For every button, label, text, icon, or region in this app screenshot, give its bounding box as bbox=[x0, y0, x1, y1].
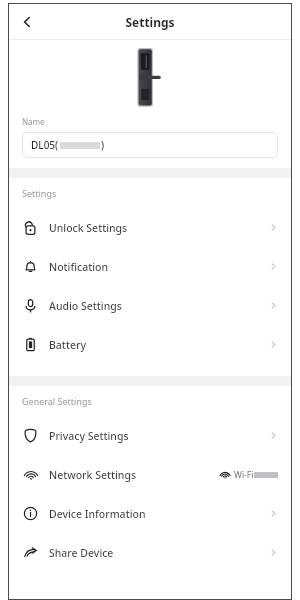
staticText: Settings bbox=[125, 14, 175, 30]
staticText: Name bbox=[22, 116, 45, 127]
staticText: Settings bbox=[22, 187, 57, 199]
button[interactable]: Device Information bbox=[8, 494, 292, 533]
staticText: Network Settings bbox=[49, 468, 137, 482]
staticText: ) bbox=[101, 138, 105, 152]
staticText: Wi-Fi bbox=[234, 469, 254, 481]
button[interactable]: Notification bbox=[8, 247, 292, 286]
button[interactable]: Back bbox=[8, 3, 46, 40]
button[interactable]: Battery bbox=[8, 325, 292, 364]
button[interactable]: Share Device bbox=[8, 533, 292, 572]
button[interactable]: DL05( bbox=[22, 132, 278, 158]
staticText: Audio Settings bbox=[49, 299, 122, 313]
staticText: DL05( bbox=[31, 138, 59, 152]
staticText: Battery bbox=[49, 338, 86, 352]
staticText: Share Device bbox=[49, 546, 114, 560]
staticText: General Settings bbox=[22, 395, 92, 407]
staticText: Device Information bbox=[49, 507, 146, 521]
button[interactable]: Audio Settings bbox=[8, 286, 292, 325]
button[interactable]: Privacy Settings bbox=[8, 416, 292, 455]
staticText: Unlock Settings bbox=[49, 221, 128, 235]
button[interactable]: Unlock Settings bbox=[8, 208, 292, 247]
staticText: Notification bbox=[49, 260, 109, 274]
staticText: Privacy Settings bbox=[49, 429, 129, 443]
button[interactable]: Network Settings bbox=[8, 455, 292, 494]
